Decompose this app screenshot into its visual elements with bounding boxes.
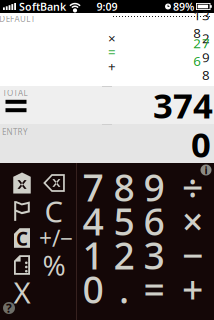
button[interactable]: Help bbox=[1, 300, 17, 316]
staticText: ÷ bbox=[182, 162, 203, 212]
button[interactable]: Flag bbox=[7, 197, 37, 224]
button[interactable]: Paste bbox=[7, 251, 37, 278]
button[interactable]: Multiply bbox=[175, 203, 209, 239]
staticText: × bbox=[182, 196, 203, 246]
staticText: C bbox=[16, 226, 28, 251]
staticText: 7 bbox=[82, 162, 103, 212]
staticText: 5 bbox=[113, 196, 134, 246]
button[interactable]: Plus minus bbox=[39, 220, 73, 256]
button[interactable]: Minus bbox=[175, 237, 209, 273]
button[interactable]: Clear bbox=[37, 193, 71, 229]
staticText: i bbox=[204, 163, 207, 177]
button[interactable]: Percent bbox=[37, 247, 71, 283]
button[interactable]: 2 bbox=[107, 237, 141, 273]
button[interactable]: Equals bbox=[137, 271, 171, 307]
staticText: 374 bbox=[153, 82, 213, 128]
button[interactable]: 8 bbox=[107, 169, 141, 205]
staticText: 2 bbox=[202, 29, 210, 47]
staticText: C bbox=[44, 191, 63, 230]
staticText: DEFAULT bbox=[0, 14, 35, 24]
button[interactable]: Divide bbox=[175, 169, 209, 205]
button[interactable]: 4 bbox=[76, 203, 110, 239]
button[interactable]: 3 bbox=[137, 237, 171, 273]
staticText: X bbox=[13, 272, 30, 311]
staticText: ENTRY bbox=[2, 127, 28, 137]
staticText: 9:09 bbox=[96, 0, 117, 14]
button[interactable]: 9 bbox=[137, 169, 171, 205]
staticText: . bbox=[119, 264, 129, 314]
button[interactable]: Decimal point bbox=[107, 271, 141, 307]
staticText: 3 bbox=[143, 230, 164, 280]
button[interactable]: Delete bbox=[39, 169, 69, 196]
staticText: 8 bbox=[113, 162, 134, 212]
staticText: 2 bbox=[113, 230, 134, 280]
staticText: 138 bbox=[193, 6, 210, 42]
button[interactable]: 5 bbox=[107, 203, 141, 239]
staticText: + bbox=[108, 57, 116, 75]
button[interactable]: 6 bbox=[137, 203, 171, 239]
button[interactable]: Close bbox=[7, 278, 37, 305]
button[interactable]: 7 bbox=[76, 169, 110, 205]
staticText: 9 bbox=[143, 162, 164, 212]
button[interactable]: Tag bbox=[7, 169, 37, 196]
staticText: = bbox=[108, 43, 116, 61]
staticText: +/− bbox=[39, 223, 73, 253]
staticText: 276 bbox=[193, 34, 210, 70]
button[interactable]: Copy bbox=[7, 224, 37, 251]
staticText: 6 bbox=[143, 196, 164, 246]
staticText: 0 bbox=[82, 264, 103, 314]
staticText: % bbox=[42, 246, 65, 284]
staticText: − bbox=[182, 230, 203, 280]
staticText: ? bbox=[6, 300, 12, 316]
staticText: 4 bbox=[82, 196, 103, 246]
staticText: + bbox=[182, 264, 203, 314]
staticText: 1 bbox=[82, 230, 103, 280]
staticText: 0 bbox=[191, 121, 211, 167]
button[interactable]: Plus bbox=[175, 271, 209, 307]
staticText: 89% bbox=[173, 0, 194, 14]
button[interactable]: 0 bbox=[76, 271, 110, 307]
button[interactable]: Info bbox=[198, 162, 214, 178]
staticText: × bbox=[108, 29, 116, 47]
staticText: TOTAL bbox=[2, 88, 27, 98]
staticText: = bbox=[143, 264, 164, 314]
staticText: 98 bbox=[202, 48, 210, 84]
button[interactable]: 1 bbox=[76, 237, 110, 273]
staticText: SoftBank bbox=[19, 0, 66, 14]
